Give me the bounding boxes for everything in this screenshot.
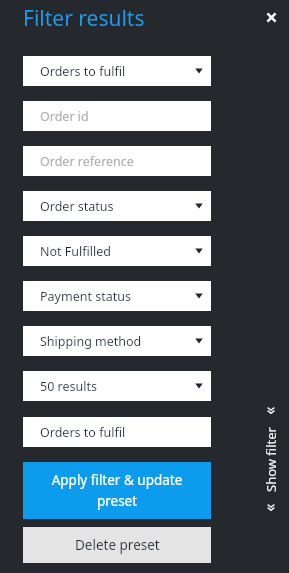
- staticText: Not Fulfilled: [40, 243, 111, 260]
- staticText: Filter results: [23, 4, 145, 32]
- staticText: Delete preset: [75, 536, 160, 554]
- staticText: Orders to fulfil: [40, 63, 126, 80]
- button[interactable]: 50 results: [23, 371, 211, 401]
- staticText: Payment status: [40, 288, 131, 305]
- button[interactable]: Shipping method: [23, 326, 211, 356]
- staticText: Order reference: [40, 153, 134, 170]
- button[interactable]: Order status: [23, 191, 211, 221]
- staticText: Shipping method: [40, 333, 142, 350]
- button[interactable]: Order reference: [23, 146, 211, 176]
- button[interactable]: Apply filter & update preset: [23, 462, 211, 519]
- button[interactable]: Close: [262, 8, 281, 27]
- staticText: Order id: [40, 108, 89, 125]
- staticText: 50 results: [40, 378, 97, 395]
- button[interactable]: Show filter: [259, 406, 283, 534]
- button[interactable]: Delete preset: [23, 527, 211, 563]
- button[interactable]: Orders to fulfil: [23, 417, 211, 447]
- staticText: Order status: [40, 198, 114, 215]
- staticText: Orders to fulfil: [40, 424, 126, 441]
- staticText: Apply filter & update preset: [41, 471, 193, 510]
- staticText: Show filter: [262, 427, 280, 492]
- button[interactable]: Orders to fulfil: [23, 56, 211, 86]
- button[interactable]: Payment status: [23, 281, 211, 311]
- button[interactable]: Filter results: [21, 4, 145, 32]
- button[interactable]: Not Fulfilled: [23, 236, 211, 266]
- button[interactable]: Order id: [23, 101, 211, 131]
